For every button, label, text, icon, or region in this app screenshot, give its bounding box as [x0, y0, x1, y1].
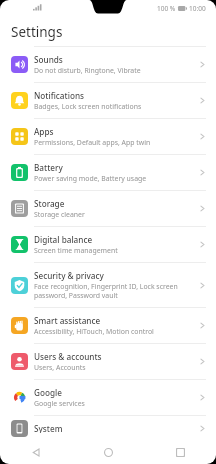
other: Open Apps: [199, 131, 206, 142]
button[interactable]: Storage: [0, 191, 216, 226]
staticText: Users, Accounts: [34, 363, 86, 372]
button[interactable]: Home: [72, 440, 144, 464]
staticText: Storage: [34, 198, 65, 209]
other: Open Sounds: [199, 59, 206, 70]
button[interactable]: Battery: [0, 155, 216, 190]
staticText: Google: [34, 387, 62, 398]
button[interactable]: Google: [0, 380, 216, 415]
staticText: Face recognition, Fingerprint ID, Lock s…: [34, 282, 195, 300]
staticText: System: [34, 423, 63, 433]
staticText: 10:00: [189, 4, 206, 13]
other: Open Notifications: [199, 95, 206, 106]
staticText: Users & accounts: [34, 351, 102, 362]
staticText: Digital balance: [34, 234, 93, 245]
staticText: Notifications: [34, 90, 84, 101]
button[interactable]: Notifications: [0, 83, 216, 118]
button[interactable]: Apps: [0, 119, 216, 154]
other: Open System: [199, 423, 206, 434]
button[interactable]: Sounds: [0, 47, 216, 82]
staticText: Google services: [34, 399, 85, 408]
button[interactable]: Users & accounts: [0, 344, 216, 379]
button[interactable]: System: [0, 416, 216, 440]
other: Open Battery: [199, 167, 206, 178]
other: Open Storage: [199, 203, 206, 214]
staticText: Screen time management: [34, 246, 118, 255]
staticText: Power saving mode, Battery usage: [34, 174, 147, 183]
staticText: Smart assistance: [34, 315, 101, 326]
staticText: Sounds: [34, 54, 63, 65]
button[interactable]: Recents: [144, 440, 216, 464]
button[interactable]: Smart assistance: [0, 308, 216, 343]
other: Open Google: [199, 392, 206, 403]
staticText: Badges, Lock screen notifications: [34, 102, 142, 111]
other: Open Users & accounts: [199, 356, 206, 367]
staticText: Security & privacy: [34, 270, 104, 281]
staticText: Permissions, Default apps, App twin: [34, 138, 151, 147]
other: Open Digital balance: [199, 239, 206, 250]
staticText: Apps: [34, 126, 54, 137]
button[interactable]: Back: [0, 440, 72, 464]
staticText: 100 %: [157, 4, 176, 13]
button[interactable]: Digital balance: [0, 227, 216, 262]
staticText: Storage cleaner: [34, 210, 85, 219]
staticText: Accessibility, HiTouch, Motion control: [34, 327, 154, 336]
other: Open Security & privacy: [199, 280, 206, 291]
staticText: Do not disturb, Ringtone, Vibrate: [34, 66, 141, 75]
staticText: Settings: [11, 23, 63, 41]
other: Open Smart assistance: [199, 320, 206, 331]
button[interactable]: Security & privacy: [0, 263, 216, 307]
staticText: Battery: [34, 162, 63, 173]
